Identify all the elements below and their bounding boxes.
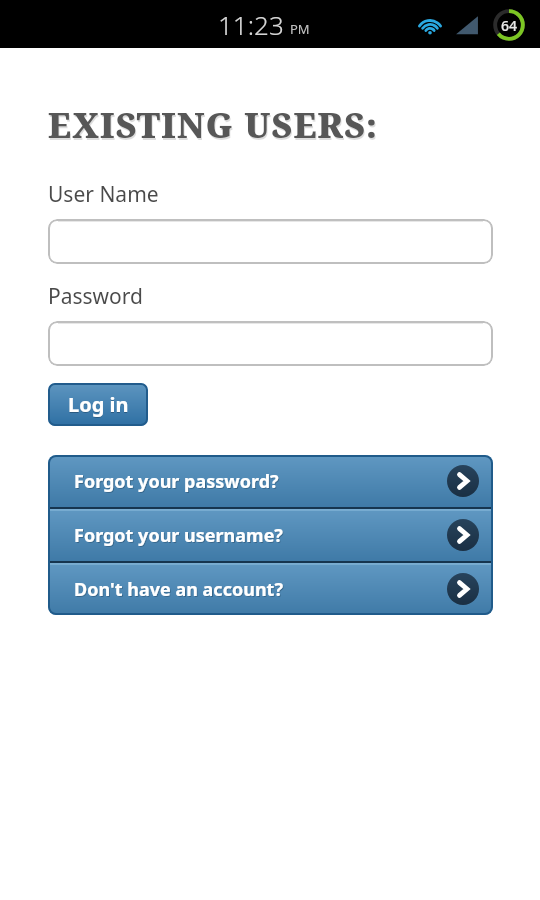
staticText: Forgot your username? xyxy=(75,524,284,549)
staticText: Forgot your username? xyxy=(74,523,283,548)
staticText: EXISTING USERS: xyxy=(49,104,380,150)
button[interactable]: Don't have an account? xyxy=(48,563,493,615)
other: Open xyxy=(447,465,479,497)
button[interactable] xyxy=(48,321,493,366)
other: Open xyxy=(447,573,479,605)
staticText: Forgot your password? xyxy=(75,470,280,495)
staticText: Log in xyxy=(68,392,129,419)
staticText: User Name xyxy=(48,180,159,209)
button[interactable]: Log in xyxy=(48,383,148,426)
staticText: Don't have an account? xyxy=(75,578,284,603)
staticText: 64 xyxy=(501,16,518,35)
staticText: 11:23 xyxy=(218,7,284,42)
button[interactable]: Forgot your username? xyxy=(48,509,493,561)
staticText: Password xyxy=(48,282,143,311)
other: Open xyxy=(447,519,479,551)
button[interactable]: Forgot your password? xyxy=(48,455,493,507)
staticText: Don't have an account? xyxy=(74,577,283,602)
button[interactable] xyxy=(48,219,493,264)
staticText: Forgot your password? xyxy=(74,469,279,494)
staticText: EXISTING USERS: xyxy=(48,102,379,148)
staticText: PM xyxy=(290,20,310,38)
staticText: Log in xyxy=(68,391,129,418)
